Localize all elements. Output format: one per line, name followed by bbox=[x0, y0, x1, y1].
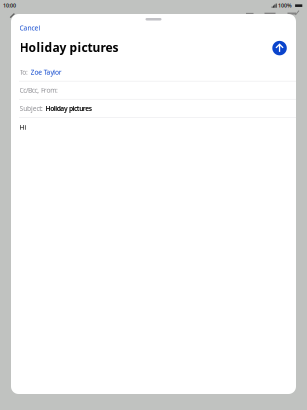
button[interactable]: Cancel bbox=[19, 22, 40, 33]
staticText: Hi bbox=[19, 123, 26, 132]
staticText: Holiday pictures bbox=[46, 104, 92, 113]
button[interactable]: Cc/Bcc, From: bbox=[11, 81, 296, 99]
staticText: 100% bbox=[278, 2, 292, 9]
button[interactable]: To: bbox=[11, 63, 296, 81]
staticText: Holiday pictures bbox=[19, 39, 118, 55]
button[interactable]: Subject: bbox=[11, 100, 296, 117]
staticText: Cancel bbox=[19, 23, 40, 32]
staticText: Zoe Taylor bbox=[31, 68, 62, 77]
staticText: 10:00 bbox=[3, 2, 16, 9]
staticText: Subject: bbox=[19, 104, 43, 113]
button[interactable]: Send bbox=[272, 41, 287, 55]
staticText: To: bbox=[19, 68, 28, 77]
staticText: Cc/Bcc, From: bbox=[19, 86, 58, 95]
